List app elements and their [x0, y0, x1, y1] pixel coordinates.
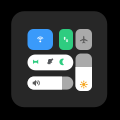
button[interactable]: Silent and Focus [27, 54, 73, 70]
button[interactable]: Wi-Fi [27, 29, 53, 50]
button[interactable]: Volume [27, 76, 73, 90]
button[interactable]: Cellular Data [59, 29, 73, 50]
button[interactable]: Brightness [75, 53, 92, 91]
button[interactable]: Airplane Mode [75, 29, 92, 50]
